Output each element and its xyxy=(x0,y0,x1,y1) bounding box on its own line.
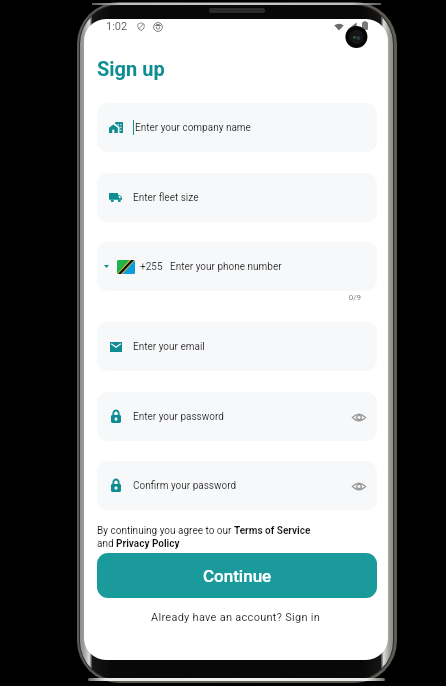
button[interactable]: +255 xyxy=(97,242,377,291)
staticText: Enter your password xyxy=(133,411,224,423)
staticText: 0/9 xyxy=(84,293,361,302)
staticText: Enter your email xyxy=(133,341,205,353)
button[interactable]: Already have an account? Sign in xyxy=(84,611,388,624)
button[interactable]: Enter your password xyxy=(97,392,377,441)
staticText: +255 xyxy=(140,261,163,273)
staticText: Continue xyxy=(203,566,272,586)
button[interactable]: By continuing you agree to our Terms of … xyxy=(97,525,377,550)
button[interactable]: Enter your company name xyxy=(97,103,377,152)
staticText: Enter fleet size xyxy=(133,192,199,204)
staticText: Enter your company name xyxy=(135,122,251,134)
staticText: Already have an account? Sign in xyxy=(151,611,321,624)
button[interactable]: Show password xyxy=(352,476,366,496)
button[interactable]: Enter your email xyxy=(97,322,377,371)
button[interactable]: Enter fleet size xyxy=(97,173,377,222)
staticText: 1:02 xyxy=(106,20,128,33)
button[interactable]: Continue xyxy=(97,553,377,598)
staticText: Confirm your password xyxy=(133,480,237,492)
staticText: Enter your phone number xyxy=(170,261,282,273)
button[interactable]: Show password xyxy=(352,407,366,427)
staticText: Sign up xyxy=(97,57,165,80)
button[interactable]: Confirm your password xyxy=(97,461,377,510)
